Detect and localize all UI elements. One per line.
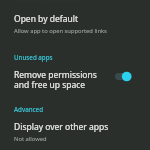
button[interactable]: Open by default: [0, 6, 150, 42]
button[interactable]: Remove permissions and free up space: [0, 69, 150, 91]
staticText: Remove permissions and free up space: [14, 69, 112, 91]
staticText: Allow app to open supported links: [14, 27, 107, 35]
staticText: Not allowed: [14, 135, 47, 143]
other: Remove permissions and free up space tog…: [115, 71, 132, 82]
staticText: Advanced: [14, 105, 43, 113]
staticText: Open by default: [14, 13, 78, 25]
staticText: Display over other apps: [14, 121, 109, 133]
staticText: Unused apps: [14, 53, 53, 61]
button[interactable]: Display over other apps: [0, 121, 150, 143]
